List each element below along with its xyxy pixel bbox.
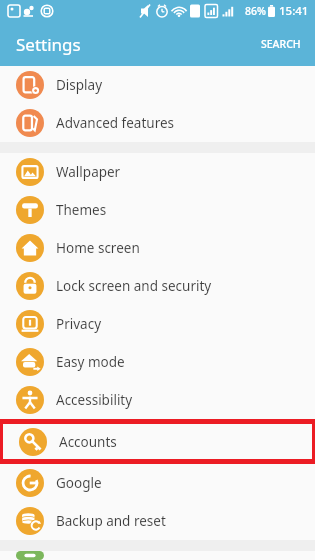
- button[interactable]: Google: [0, 464, 315, 502]
- staticText: Home screen: [56, 239, 140, 257]
- button[interactable]: Lock screen and security: [0, 267, 315, 305]
- button[interactable]: Privacy: [0, 305, 315, 343]
- staticText: Display: [56, 76, 103, 94]
- staticText: 15:41: [279, 3, 309, 19]
- staticText: Accessibility: [56, 391, 133, 409]
- staticText: Accounts: [59, 433, 117, 451]
- staticText: Google: [56, 474, 102, 492]
- staticText: 86%: [245, 4, 266, 18]
- staticText: Wallpaper: [56, 163, 121, 181]
- staticText: Easy mode: [56, 353, 125, 371]
- button[interactable]: Accessibility: [0, 381, 315, 419]
- button[interactable]: Easy mode: [0, 343, 315, 381]
- staticText: SEARCH: [261, 37, 301, 51]
- staticText: Settings: [16, 33, 81, 56]
- button[interactable]: SEARCH: [247, 27, 315, 61]
- button[interactable]: Display: [0, 66, 315, 104]
- button[interactable]: Accounts: [3, 424, 312, 459]
- staticText: Backup and reset: [56, 512, 166, 530]
- staticText: Privacy: [56, 315, 102, 333]
- button[interactable]: Wallpaper: [0, 153, 315, 191]
- staticText: Advanced features: [56, 114, 175, 132]
- button[interactable]: Backup and reset: [0, 502, 315, 540]
- button[interactable]: Advanced features: [0, 104, 315, 142]
- staticText: Lock screen and security: [56, 277, 212, 295]
- staticText: Themes: [56, 201, 107, 219]
- button[interactable]: Themes: [0, 191, 315, 229]
- button[interactable]: Home screen: [0, 229, 315, 267]
